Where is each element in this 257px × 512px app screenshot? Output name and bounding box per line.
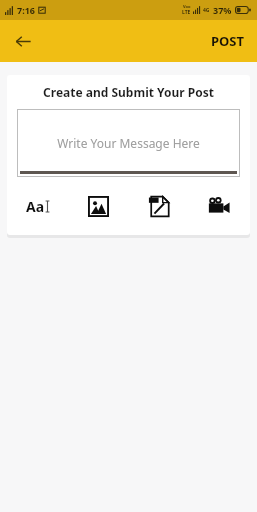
staticText: 7:16 (17, 4, 35, 16)
button[interactable]: Text formatting (23, 191, 53, 221)
staticText: Write Your Message Here (17, 135, 240, 151)
staticText: Aa (26, 197, 45, 216)
button[interactable]: Add GIF (144, 191, 174, 221)
staticText: 4G (203, 7, 210, 14)
staticText: POST (211, 32, 245, 50)
staticText: Voo (183, 4, 191, 9)
button[interactable]: Back (6, 24, 40, 58)
staticText: Create and Submit Your Post (17, 84, 240, 100)
button[interactable]: POST (203, 26, 253, 56)
staticText: LTE (182, 9, 191, 16)
button[interactable]: Add video (204, 191, 234, 221)
staticText: 37% (213, 4, 232, 16)
button[interactable]: Write Your Message Here (17, 109, 240, 177)
button[interactable]: Add image (83, 191, 113, 221)
